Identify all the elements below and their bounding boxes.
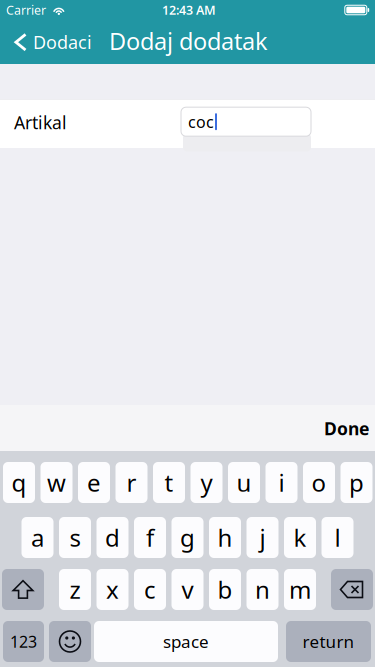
button[interactable]: n	[246, 569, 278, 610]
staticText: t	[164, 466, 173, 499]
button[interactable]: Emoji	[49, 621, 91, 662]
staticText: b	[217, 573, 232, 606]
staticText: i	[278, 466, 284, 499]
button[interactable]: l	[321, 517, 353, 558]
button[interactable]: m	[284, 569, 316, 610]
staticText: r	[126, 466, 136, 499]
staticText: l	[334, 521, 340, 554]
button[interactable]: c	[134, 569, 166, 610]
button[interactable]: 123	[3, 621, 44, 662]
button[interactable]: v	[171, 569, 203, 610]
staticText: 123	[10, 631, 37, 652]
staticText: n	[255, 573, 270, 606]
staticText: k	[293, 521, 306, 554]
button[interactable]: e	[78, 462, 110, 503]
button[interactable]: Dodaci	[6, 20, 100, 64]
button[interactable]: d	[96, 517, 128, 558]
staticText: w	[47, 466, 66, 499]
staticText: Dodaci	[33, 30, 92, 54]
button[interactable]: x	[96, 569, 128, 610]
staticText: v	[181, 573, 193, 606]
staticText: g	[180, 521, 195, 554]
button[interactable]: i	[265, 462, 297, 503]
staticText: coc	[188, 111, 214, 133]
staticText: z	[69, 573, 80, 606]
button[interactable]: w	[40, 462, 72, 503]
button[interactable]: o	[303, 462, 335, 503]
button[interactable]: y	[190, 462, 222, 503]
staticText: y	[200, 466, 212, 499]
button[interactable]: Delete	[331, 569, 373, 610]
staticText: q	[11, 466, 26, 499]
button[interactable]: f	[134, 517, 166, 558]
staticText: Artikal	[14, 111, 67, 134]
button[interactable]: j	[246, 517, 278, 558]
staticText: return	[302, 630, 354, 653]
staticText: p	[349, 466, 364, 499]
button[interactable]: b	[209, 569, 241, 610]
button[interactable]: g	[171, 517, 203, 558]
staticText: Dodaj dodatak	[109, 25, 268, 57]
staticText: e	[87, 466, 101, 499]
staticText: u	[236, 466, 251, 499]
button[interactable]: p	[340, 462, 372, 503]
staticText: x	[106, 573, 119, 606]
button[interactable]: r	[115, 462, 147, 503]
button[interactable]: return	[286, 621, 371, 662]
staticText: s	[69, 521, 80, 554]
staticText: m	[289, 573, 311, 606]
button[interactable]: t	[153, 462, 185, 503]
staticText: Carrier	[6, 1, 46, 18]
staticText: c	[144, 573, 156, 606]
staticText: a	[31, 521, 44, 554]
staticText: space	[163, 630, 209, 653]
button[interactable]: h	[209, 517, 241, 558]
staticText: 12:43 AM	[162, 1, 216, 18]
button[interactable]: a	[21, 517, 53, 558]
staticText: h	[217, 521, 232, 554]
button[interactable]: k	[284, 517, 316, 558]
button[interactable]: Done	[310, 405, 375, 451]
button[interactable]: q	[3, 462, 35, 503]
button[interactable]: space	[94, 621, 278, 662]
staticText: o	[311, 466, 326, 499]
staticText: j	[259, 521, 265, 554]
staticText: d	[105, 521, 120, 554]
button[interactable]: z	[59, 569, 91, 610]
button[interactable]: s	[59, 517, 91, 558]
button[interactable]: Shift	[2, 569, 44, 610]
staticText: f	[146, 521, 154, 554]
staticText: Done	[324, 417, 369, 440]
button[interactable]: u	[228, 462, 260, 503]
